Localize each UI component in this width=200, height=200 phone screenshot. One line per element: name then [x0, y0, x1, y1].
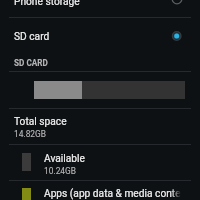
staticText: Available [44, 153, 85, 165]
other: Select phone storage [170, 0, 184, 6]
staticText: SD card [14, 31, 50, 43]
button[interactable]: Phone storage [0, 0, 200, 17]
button[interactable]: Available [0, 145, 200, 180]
staticText: Phone storage [14, 0, 80, 8]
staticText: 10.24GB [44, 166, 77, 176]
button[interactable]: Total space [0, 109, 200, 144]
button[interactable]: Apps (app data & media content) [0, 181, 200, 200]
staticText: Total space [14, 116, 67, 128]
button[interactable]: SD card [0, 20, 200, 54]
staticText: Apps (app data & media content) [44, 188, 181, 200]
staticText: 14.82GB [14, 129, 47, 139]
staticText: SD CARD [14, 58, 48, 68]
